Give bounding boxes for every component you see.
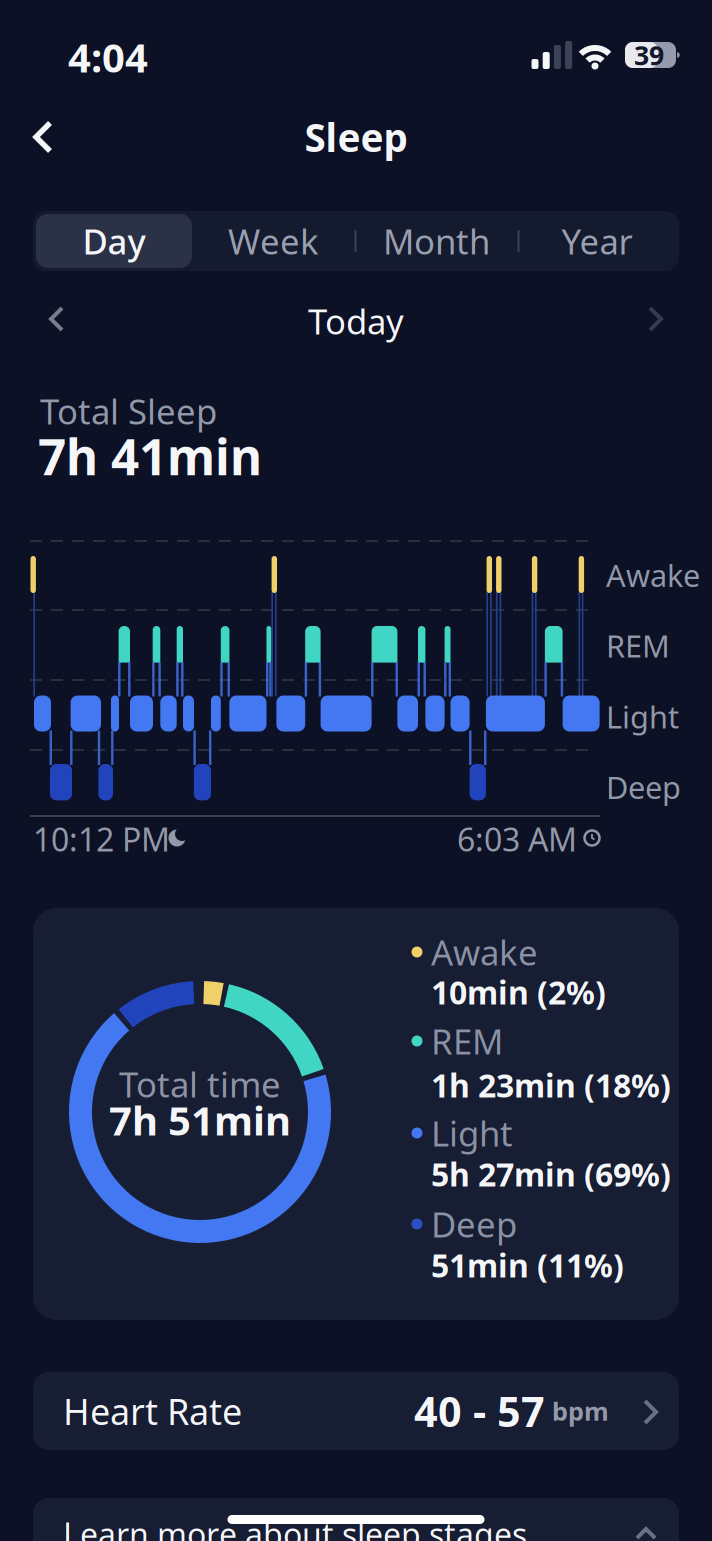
staticText: 10min (2%) [431,971,606,1013]
staticText: Month [383,218,490,264]
staticText: Heart Rate [63,1387,242,1435]
staticText: Deep [431,1201,517,1247]
staticText: 51min (11%) [431,1244,624,1286]
button[interactable] [42,303,72,339]
staticText: Total time [119,1061,281,1107]
staticText: Light [431,1110,513,1156]
button[interactable] [27,117,61,157]
staticText: Awake [431,929,538,975]
staticText: Learn more about sleep stages [63,1513,527,1541]
staticText: Day [82,218,145,264]
staticText: 40 - 57 [414,1384,545,1438]
staticText: Week [228,218,319,264]
staticText: REM [431,1018,503,1064]
staticText: 4:04 [68,30,148,83]
button[interactable]: Learn more about sleep stages [33,1498,679,1541]
staticText: REM [606,625,670,666]
staticText: 1h 23min (18%) [431,1064,671,1106]
staticText: Today [308,298,404,344]
button[interactable] [640,303,670,339]
button[interactable]: Week [198,214,348,268]
staticText: 7h 41min [38,423,262,489]
staticText: Deep [606,767,681,807]
staticText: Total Sleep [40,388,217,434]
button[interactable]: Day [36,214,192,268]
staticText: Light [606,696,679,737]
staticText: bpm [545,1394,609,1428]
button[interactable]: Heart Rate [33,1372,679,1450]
staticText: 39 [634,37,664,73]
staticText: Year [561,218,632,264]
staticText: 5h 27min (69%) [431,1153,671,1195]
staticText: 10:12 PM [33,818,170,860]
staticText: 6:03 AM [457,818,577,860]
button[interactable]: Year [522,214,672,268]
staticText: 7h 51min [109,1093,291,1146]
staticText: Awake [606,555,700,595]
button[interactable]: Month [361,214,511,268]
staticText: Sleep [304,111,407,163]
